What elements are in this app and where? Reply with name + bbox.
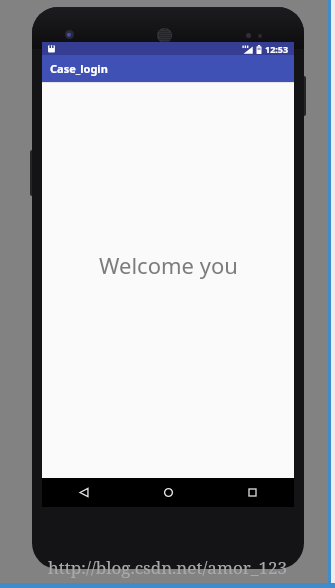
staticText: Welcome you — [99, 250, 238, 280]
button[interactable]: Back — [42, 478, 126, 507]
button[interactable]: Recents — [210, 478, 294, 507]
staticText: 12:53 — [265, 43, 289, 55]
button[interactable]: Case_login — [42, 55, 294, 82]
button[interactable]: Home — [126, 478, 210, 507]
staticText: Case_login — [50, 61, 108, 76]
staticText: http://blog.csdn.net/amor_123 — [0, 556, 335, 579]
